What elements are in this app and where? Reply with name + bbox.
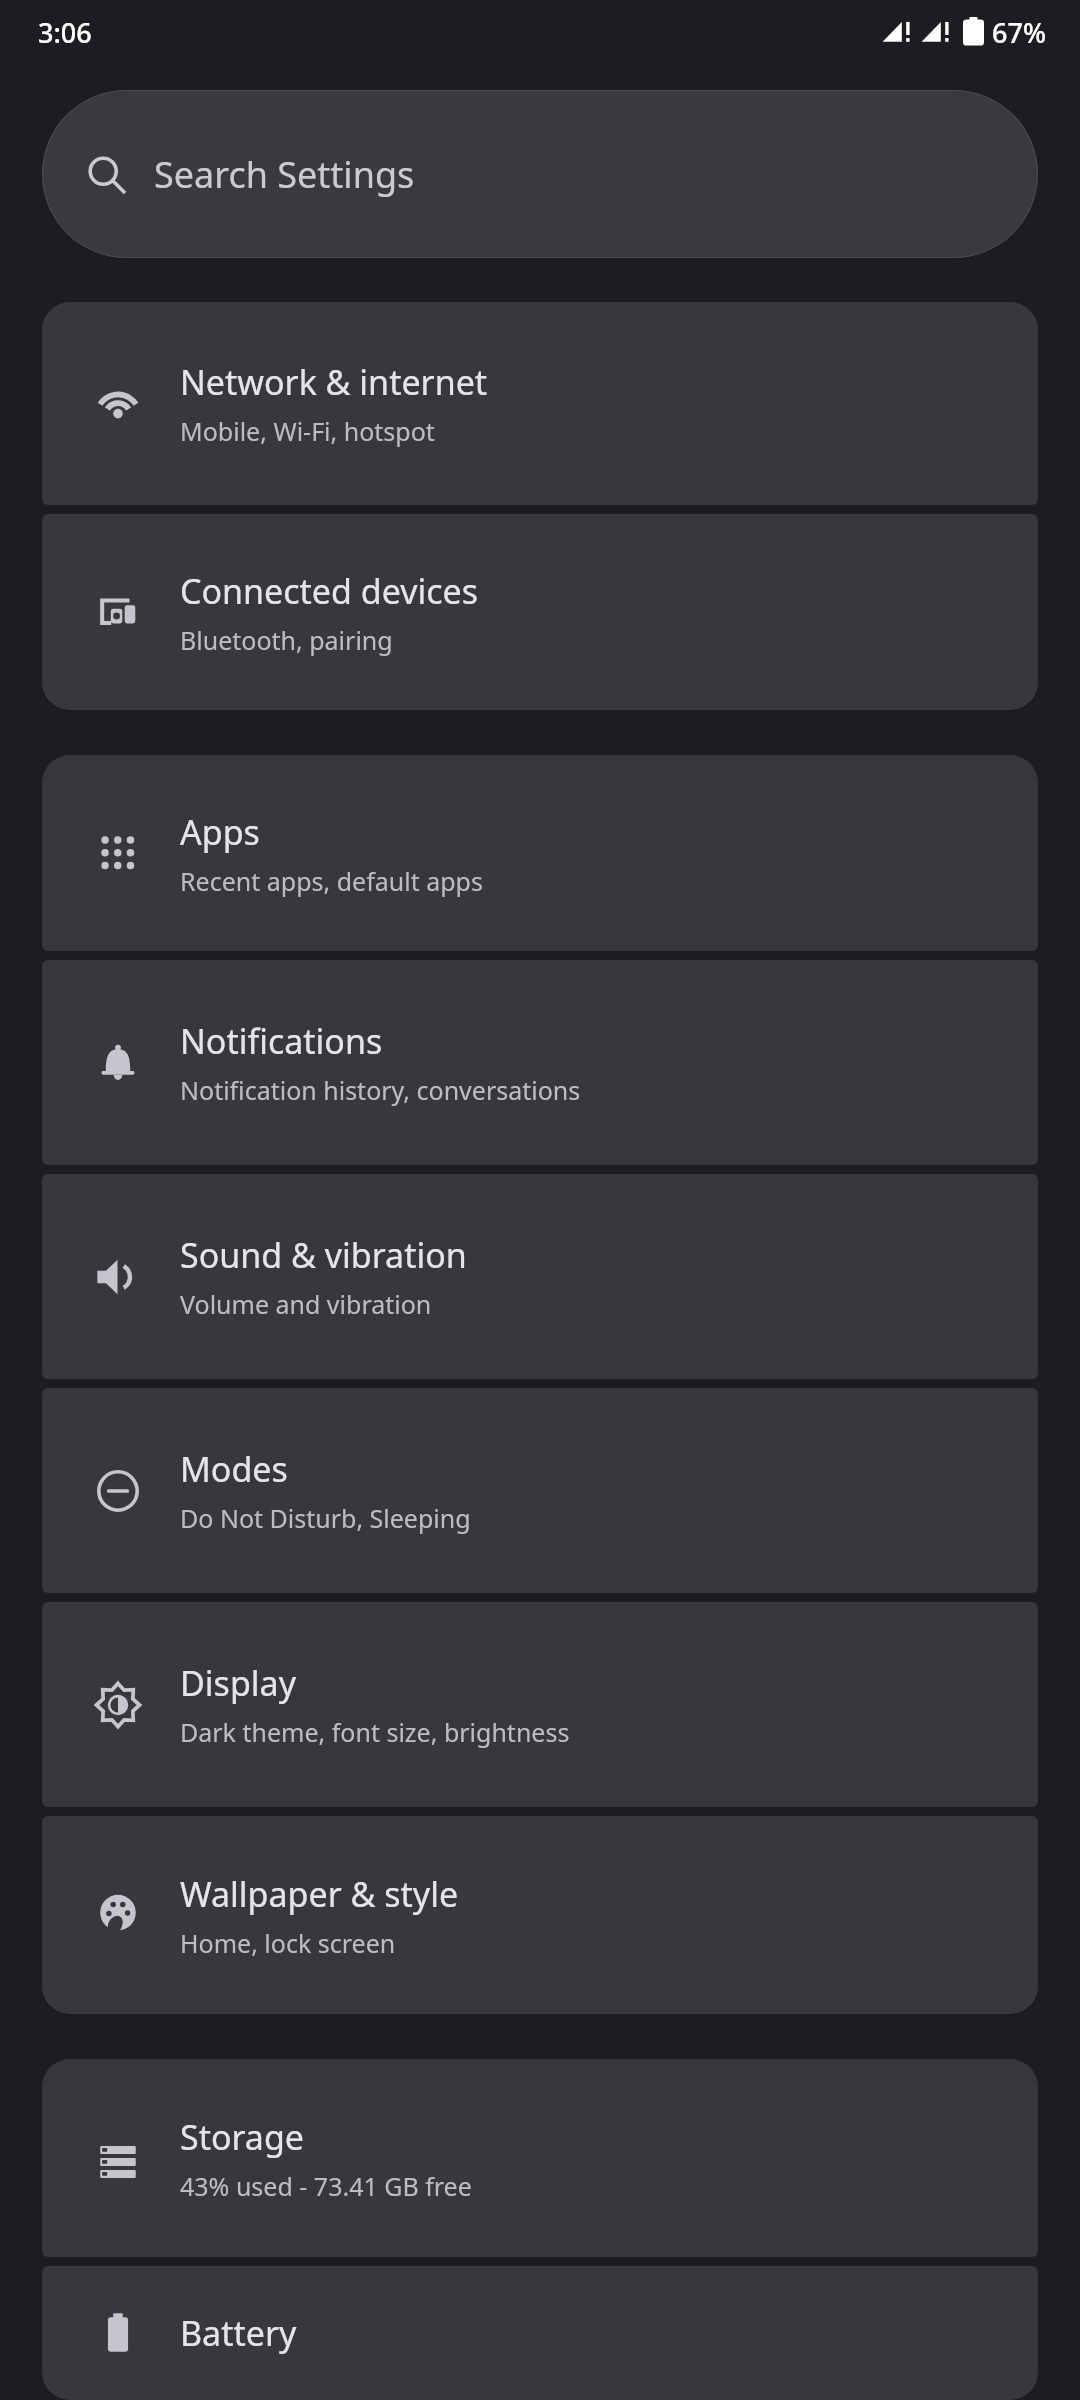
button[interactable]: Wallpaper and style [42,1816,1038,2014]
other: Display [94,1681,142,1729]
staticText: Network & internet [180,359,488,405]
other: Network and internet [94,380,142,428]
staticText: Volume and vibration [180,1287,432,1321]
staticText: Dark theme, font size, brightness [180,1715,570,1749]
staticText: Do Not Disturb, Sleeping [180,1501,471,1535]
staticText: 67% [992,14,1046,51]
button[interactable]: Search [42,90,1038,258]
staticText: Notifications [180,1018,383,1064]
button[interactable]: Storage [42,2059,1038,2257]
other: Search [86,154,128,196]
other: Battery [94,2309,142,2357]
staticText: Search Settings [154,150,415,199]
staticText: Wallpaper & style [180,1871,459,1917]
button[interactable]: Network and internet [42,302,1038,505]
staticText: Connected devices [180,568,479,614]
button[interactable]: Connected devices [42,514,1038,710]
staticText: Storage [180,2114,305,2160]
staticText: Notification history, conversations [180,1073,581,1107]
other: Connected devices [94,588,142,636]
staticText: Recent apps, default apps [180,864,483,898]
other: Modes [94,1467,142,1515]
staticText: Modes [180,1446,288,1492]
button[interactable]: Notifications [42,960,1038,1165]
other: Apps [94,829,142,877]
other: Wallpaper and style [94,1891,142,1939]
staticText: 43% used - 73.41 GB free [180,2169,472,2203]
staticText: Home, lock screen [180,1926,396,1960]
staticText: Bluetooth, pairing [180,623,393,657]
staticText: 3:06 [38,14,92,51]
other: Sound and vibration [94,1253,142,1301]
other: Storage [94,2134,142,2182]
button[interactable]: Modes [42,1388,1038,1593]
button[interactable]: Apps [42,755,1038,951]
button[interactable]: Battery [42,2266,1038,2400]
button[interactable]: Sound and vibration [42,1174,1038,1379]
staticText: Apps [180,809,260,855]
other: Notifications [94,1039,142,1087]
staticText: Battery [180,2310,297,2356]
staticText: Sound & vibration [180,1232,467,1278]
button[interactable]: Display [42,1602,1038,1807]
staticText: Mobile, Wi-Fi, hotspot [180,414,435,448]
staticText: Display [180,1660,296,1706]
